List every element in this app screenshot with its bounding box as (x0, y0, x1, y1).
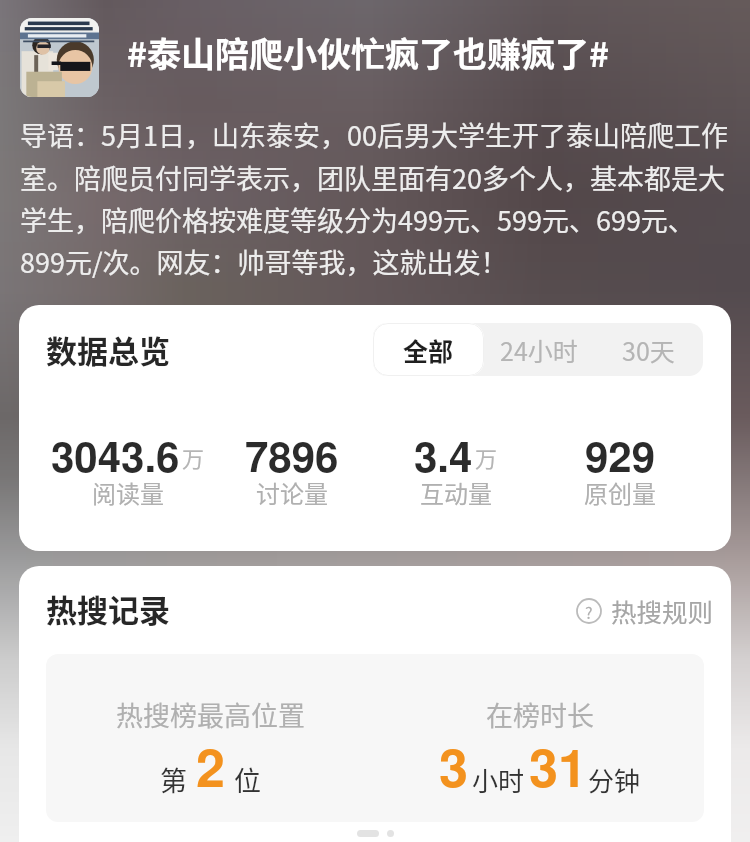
staticText: 929 (585, 425, 656, 485)
button[interactable]: 全部 (373, 323, 484, 376)
staticText: 第 (160, 760, 187, 799)
staticText: ? (585, 600, 593, 623)
staticText: 热搜规则 (611, 592, 714, 629)
button[interactable]: 30天 (594, 323, 703, 376)
button[interactable]: #泰山陪爬小伙忙疯了也赚疯了# (20, 18, 732, 97)
staticText: 万 (475, 441, 498, 473)
staticText: 3043.6 (51, 425, 180, 485)
staticText: 3.4 (414, 425, 473, 485)
staticText: 2 (196, 728, 225, 802)
staticText: 3 (439, 728, 468, 802)
button[interactable]: 24小时 (484, 323, 594, 376)
staticText: 阅读量 (92, 475, 164, 510)
staticText: 万 (182, 441, 205, 473)
staticText: 7896 (245, 425, 339, 485)
staticText: 在榜时长 (486, 695, 594, 734)
staticText: 31 (529, 728, 587, 802)
staticText: 原创量 (584, 475, 656, 510)
staticText: 讨论量 (256, 475, 328, 510)
button[interactable]: 热搜规则 (573, 589, 717, 632)
staticText: 全部 (403, 332, 454, 368)
staticText: 30天 (622, 332, 675, 368)
staticText: 小时 (472, 761, 525, 799)
staticText: 互动量 (420, 475, 492, 510)
staticText: 分钟 (588, 761, 641, 799)
staticText: 热搜记录 (46, 586, 170, 631)
staticText: 24小时 (500, 332, 578, 368)
staticText: 热搜榜最高位置 (116, 695, 305, 734)
staticText: 位 (234, 760, 261, 799)
staticText: 导语：5月1日，山东泰安，00后男大学生开了泰山陪爬工作室。陪爬员付同学表示，团… (20, 115, 730, 280)
staticText: #泰山陪爬小伙忙疯了也赚疯了# (127, 28, 610, 77)
staticText: 数据总览 (46, 327, 170, 372)
